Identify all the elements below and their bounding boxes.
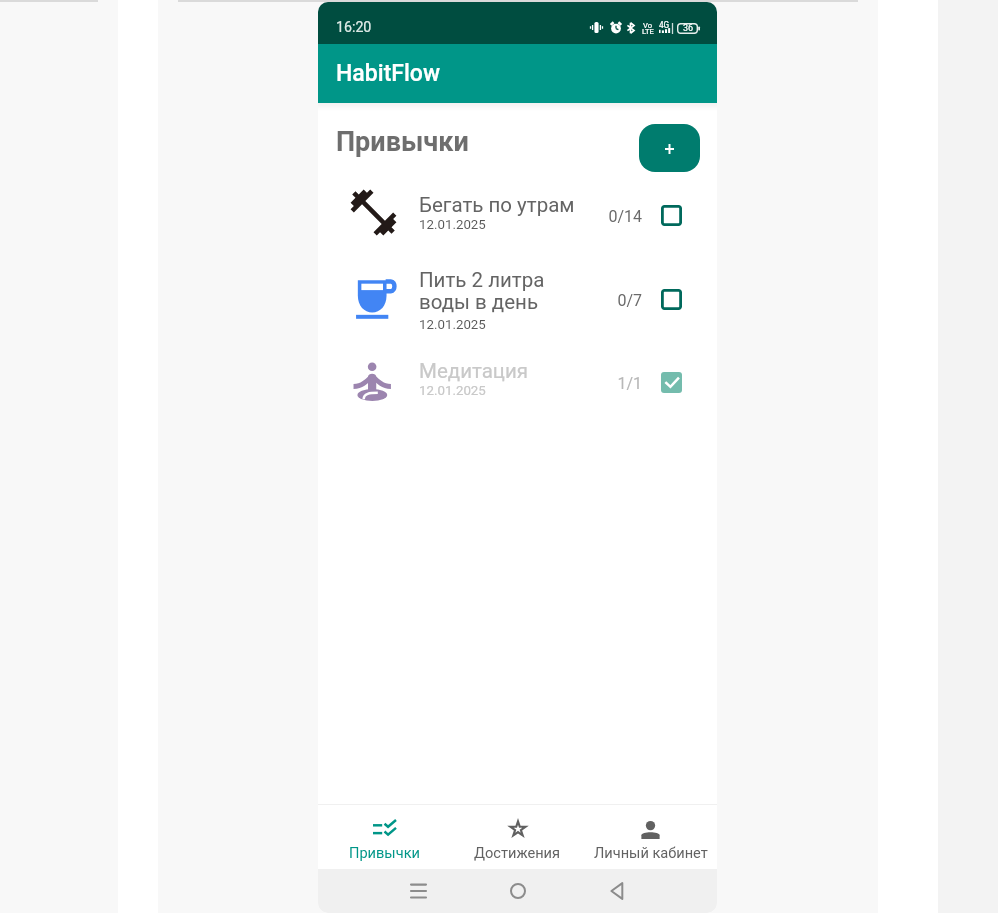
staticText: 0/7 [582, 291, 642, 310]
button[interactable] [318, 187, 717, 245]
staticText: 4G [659, 20, 670, 30]
button[interactable]: Добавить привычку [639, 124, 700, 172]
button[interactable]: Отметить выполненной [656, 367, 686, 397]
staticText: воды в день [419, 290, 539, 314]
staticText: Привычки [349, 844, 420, 861]
button[interactable]: Отметить выполненной [656, 200, 686, 230]
staticText: 36 [683, 23, 694, 34]
staticText: LTE [642, 27, 654, 36]
button[interactable]: Back [597, 871, 637, 911]
button[interactable]: Привычки [318, 800, 451, 869]
staticText: 0/14 [582, 207, 642, 226]
button[interactable]: Отметить выполненной [656, 284, 686, 314]
staticText: 12.01.2025 [419, 217, 486, 233]
staticText: Vo [643, 21, 652, 30]
staticText: 12.01.2025 [419, 317, 486, 333]
button[interactable]: Recents [398, 870, 438, 910]
staticText: Привычки [336, 126, 469, 158]
staticText: Личный кабинет [594, 844, 708, 861]
button[interactable] [318, 259, 717, 343]
staticText: Бегать по утрам [419, 193, 575, 217]
staticText: 1/1 [582, 374, 642, 393]
staticText: Достижения [474, 844, 561, 861]
staticText: Пить 2 литра [419, 268, 545, 292]
staticText: Медитация [419, 359, 529, 383]
staticText: 12.01.2025 [419, 383, 486, 399]
button[interactable] [318, 354, 717, 412]
staticText: HabitFlow [336, 60, 441, 87]
button[interactable]: Достижения [451, 800, 584, 869]
button[interactable]: Home [498, 871, 538, 911]
staticText: 16:20 [336, 19, 372, 36]
button[interactable]: Личный кабинет [584, 800, 717, 869]
